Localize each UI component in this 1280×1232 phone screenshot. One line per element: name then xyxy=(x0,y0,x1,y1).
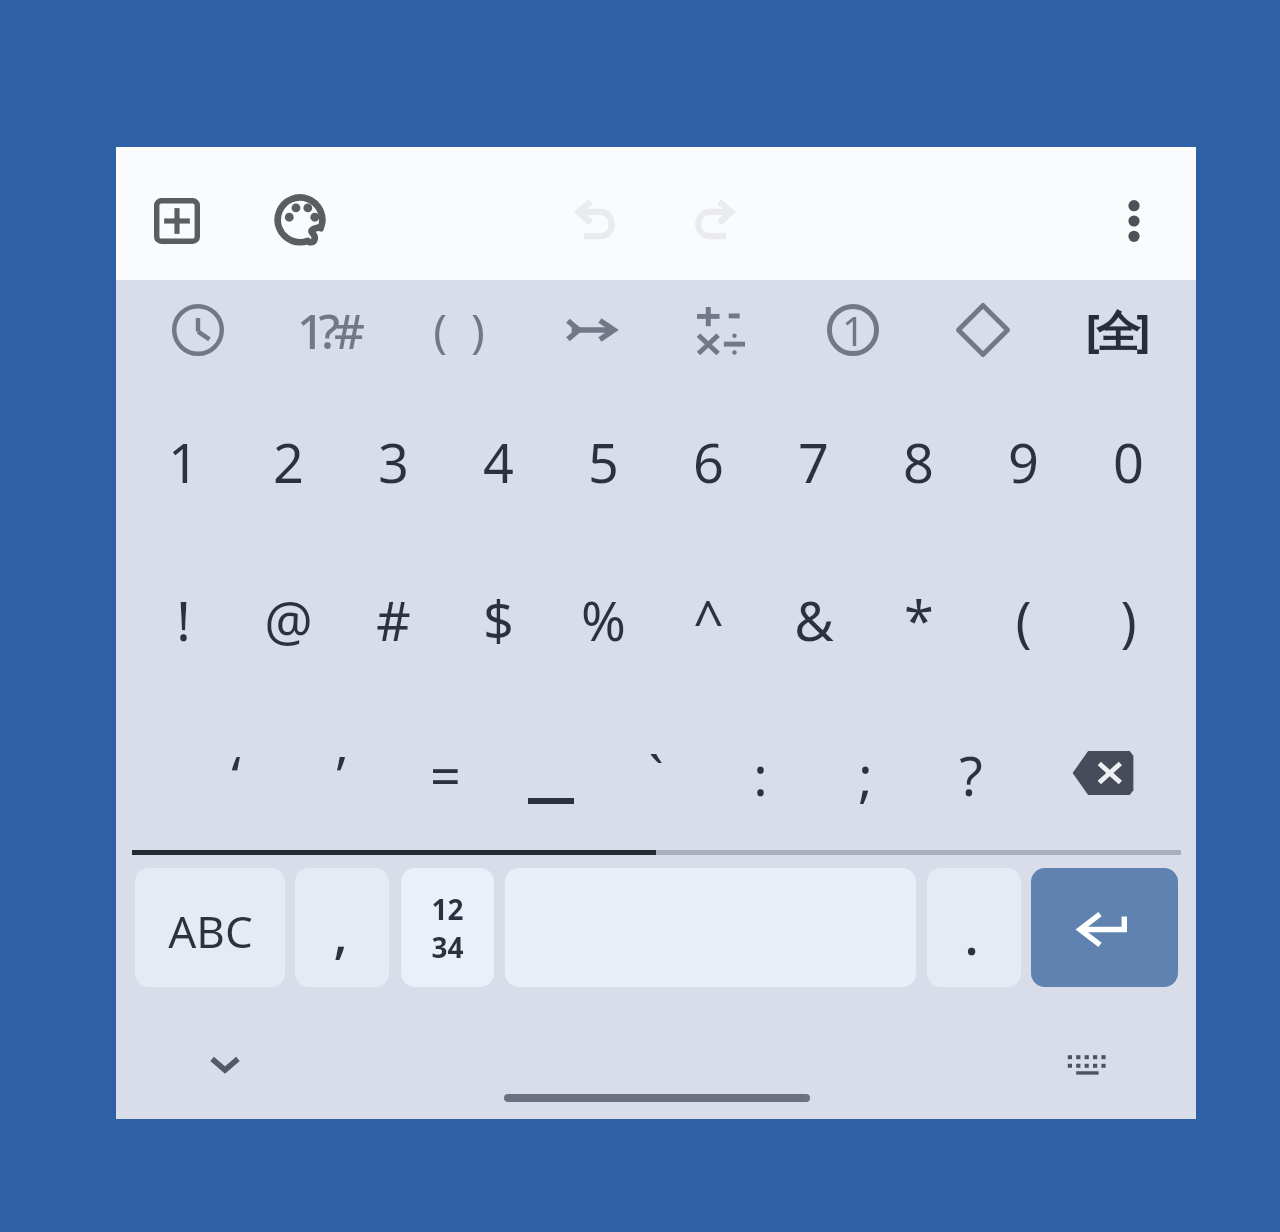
staticText: % xyxy=(581,583,626,657)
button[interactable]: * xyxy=(866,545,971,695)
staticText: 0 xyxy=(1113,425,1144,499)
staticText: & xyxy=(794,583,834,657)
button[interactable]: Enter xyxy=(1031,868,1178,987)
button[interactable]: Delete xyxy=(1051,703,1155,843)
button[interactable]: 3 xyxy=(341,387,446,537)
button[interactable]: ‘ xyxy=(183,700,288,850)
button[interactable]: More options xyxy=(1092,179,1176,263)
staticText: 1?# xyxy=(297,298,359,363)
staticText: 9 xyxy=(1008,425,1039,499)
button[interactable]: ` xyxy=(603,700,708,850)
button[interactable]: ABC xyxy=(135,868,285,987)
button[interactable]: ? xyxy=(918,700,1023,850)
button[interactable]: Brackets xyxy=(397,275,527,385)
button[interactable]: Shapes xyxy=(918,275,1048,385)
button[interactable]: ! xyxy=(131,545,236,695)
staticText: 7 xyxy=(798,425,829,499)
staticText: $ xyxy=(483,583,514,657)
button[interactable]: Numbers and symbols xyxy=(263,275,393,385)
button[interactable]: 7 xyxy=(761,387,866,537)
button[interactable]: Undo xyxy=(554,179,638,263)
button[interactable]: ) xyxy=(1076,545,1181,695)
button[interactable]: 1234 xyxy=(401,868,494,987)
button[interactable]: % xyxy=(551,545,656,695)
button[interactable]: 6 xyxy=(656,387,761,537)
staticText: : xyxy=(753,738,768,812)
staticText: 1 xyxy=(168,425,199,499)
button[interactable]: 1 xyxy=(131,387,236,537)
button[interactable]: Math symbols xyxy=(656,275,786,385)
staticText: 4 xyxy=(483,425,514,499)
button[interactable]: Full width xyxy=(1051,275,1181,385)
button[interactable]: ’ xyxy=(288,700,393,850)
button[interactable]: ^ xyxy=(656,545,761,695)
staticText: ^ xyxy=(693,583,724,657)
button[interactable]: ( xyxy=(971,545,1076,695)
staticText: ? xyxy=(959,738,983,812)
staticText: ` xyxy=(648,738,664,812)
staticText: 2 xyxy=(273,425,304,499)
button[interactable]: , xyxy=(295,868,389,987)
button[interactable]: = xyxy=(393,700,498,850)
button[interactable]: Arrows xyxy=(525,275,655,385)
button[interactable]: Add xyxy=(135,179,219,263)
staticText: ( xyxy=(1015,583,1032,657)
button[interactable]: & xyxy=(761,545,866,695)
button[interactable]: 5 xyxy=(551,387,656,537)
button[interactable]: Hide keyboard xyxy=(183,1022,267,1106)
staticText: @ xyxy=(264,583,313,657)
staticText: 3 xyxy=(378,425,409,499)
staticText: ( ) xyxy=(433,299,491,362)
staticText: 5 xyxy=(588,425,619,499)
button[interactable]: 2 xyxy=(236,387,341,537)
staticText: 12 xyxy=(431,890,464,928)
button[interactable]: @ xyxy=(236,545,341,695)
button[interactable]: : xyxy=(708,700,813,850)
staticText: 8 xyxy=(903,425,934,499)
staticText: 34 xyxy=(431,928,464,966)
button[interactable]: 8 xyxy=(866,387,971,537)
staticText: . xyxy=(964,897,979,971)
staticText: ; xyxy=(858,738,873,812)
button[interactable]: . xyxy=(927,868,1021,987)
staticText: = xyxy=(430,738,461,812)
button[interactable]: 9 xyxy=(971,387,1076,537)
staticText: ‘ xyxy=(231,738,241,812)
staticText: , xyxy=(333,895,348,969)
button[interactable]: 0 xyxy=(1076,387,1181,537)
button[interactable]: _ xyxy=(498,700,603,850)
staticText: * xyxy=(904,583,934,657)
staticText: 6 xyxy=(693,425,724,499)
button[interactable]: # xyxy=(341,545,446,695)
button[interactable]: Switch keyboard xyxy=(1045,1022,1129,1106)
button[interactable]: Recent xyxy=(133,275,263,385)
button[interactable]: $ xyxy=(446,545,551,695)
staticText: 1 xyxy=(842,303,865,357)
button[interactable]: 4 xyxy=(446,387,551,537)
button[interactable]: Theme xyxy=(258,179,342,263)
staticText: ABC xyxy=(168,901,253,961)
staticText: [全] xyxy=(1085,300,1147,360)
button[interactable]: Redo xyxy=(672,179,756,263)
staticText: ! xyxy=(176,583,191,657)
staticText: ’ xyxy=(336,738,346,812)
staticText: ) xyxy=(1120,583,1137,657)
button[interactable]: ; xyxy=(813,700,918,850)
button[interactable]: Number forms xyxy=(788,275,918,385)
staticText: # xyxy=(376,583,411,657)
